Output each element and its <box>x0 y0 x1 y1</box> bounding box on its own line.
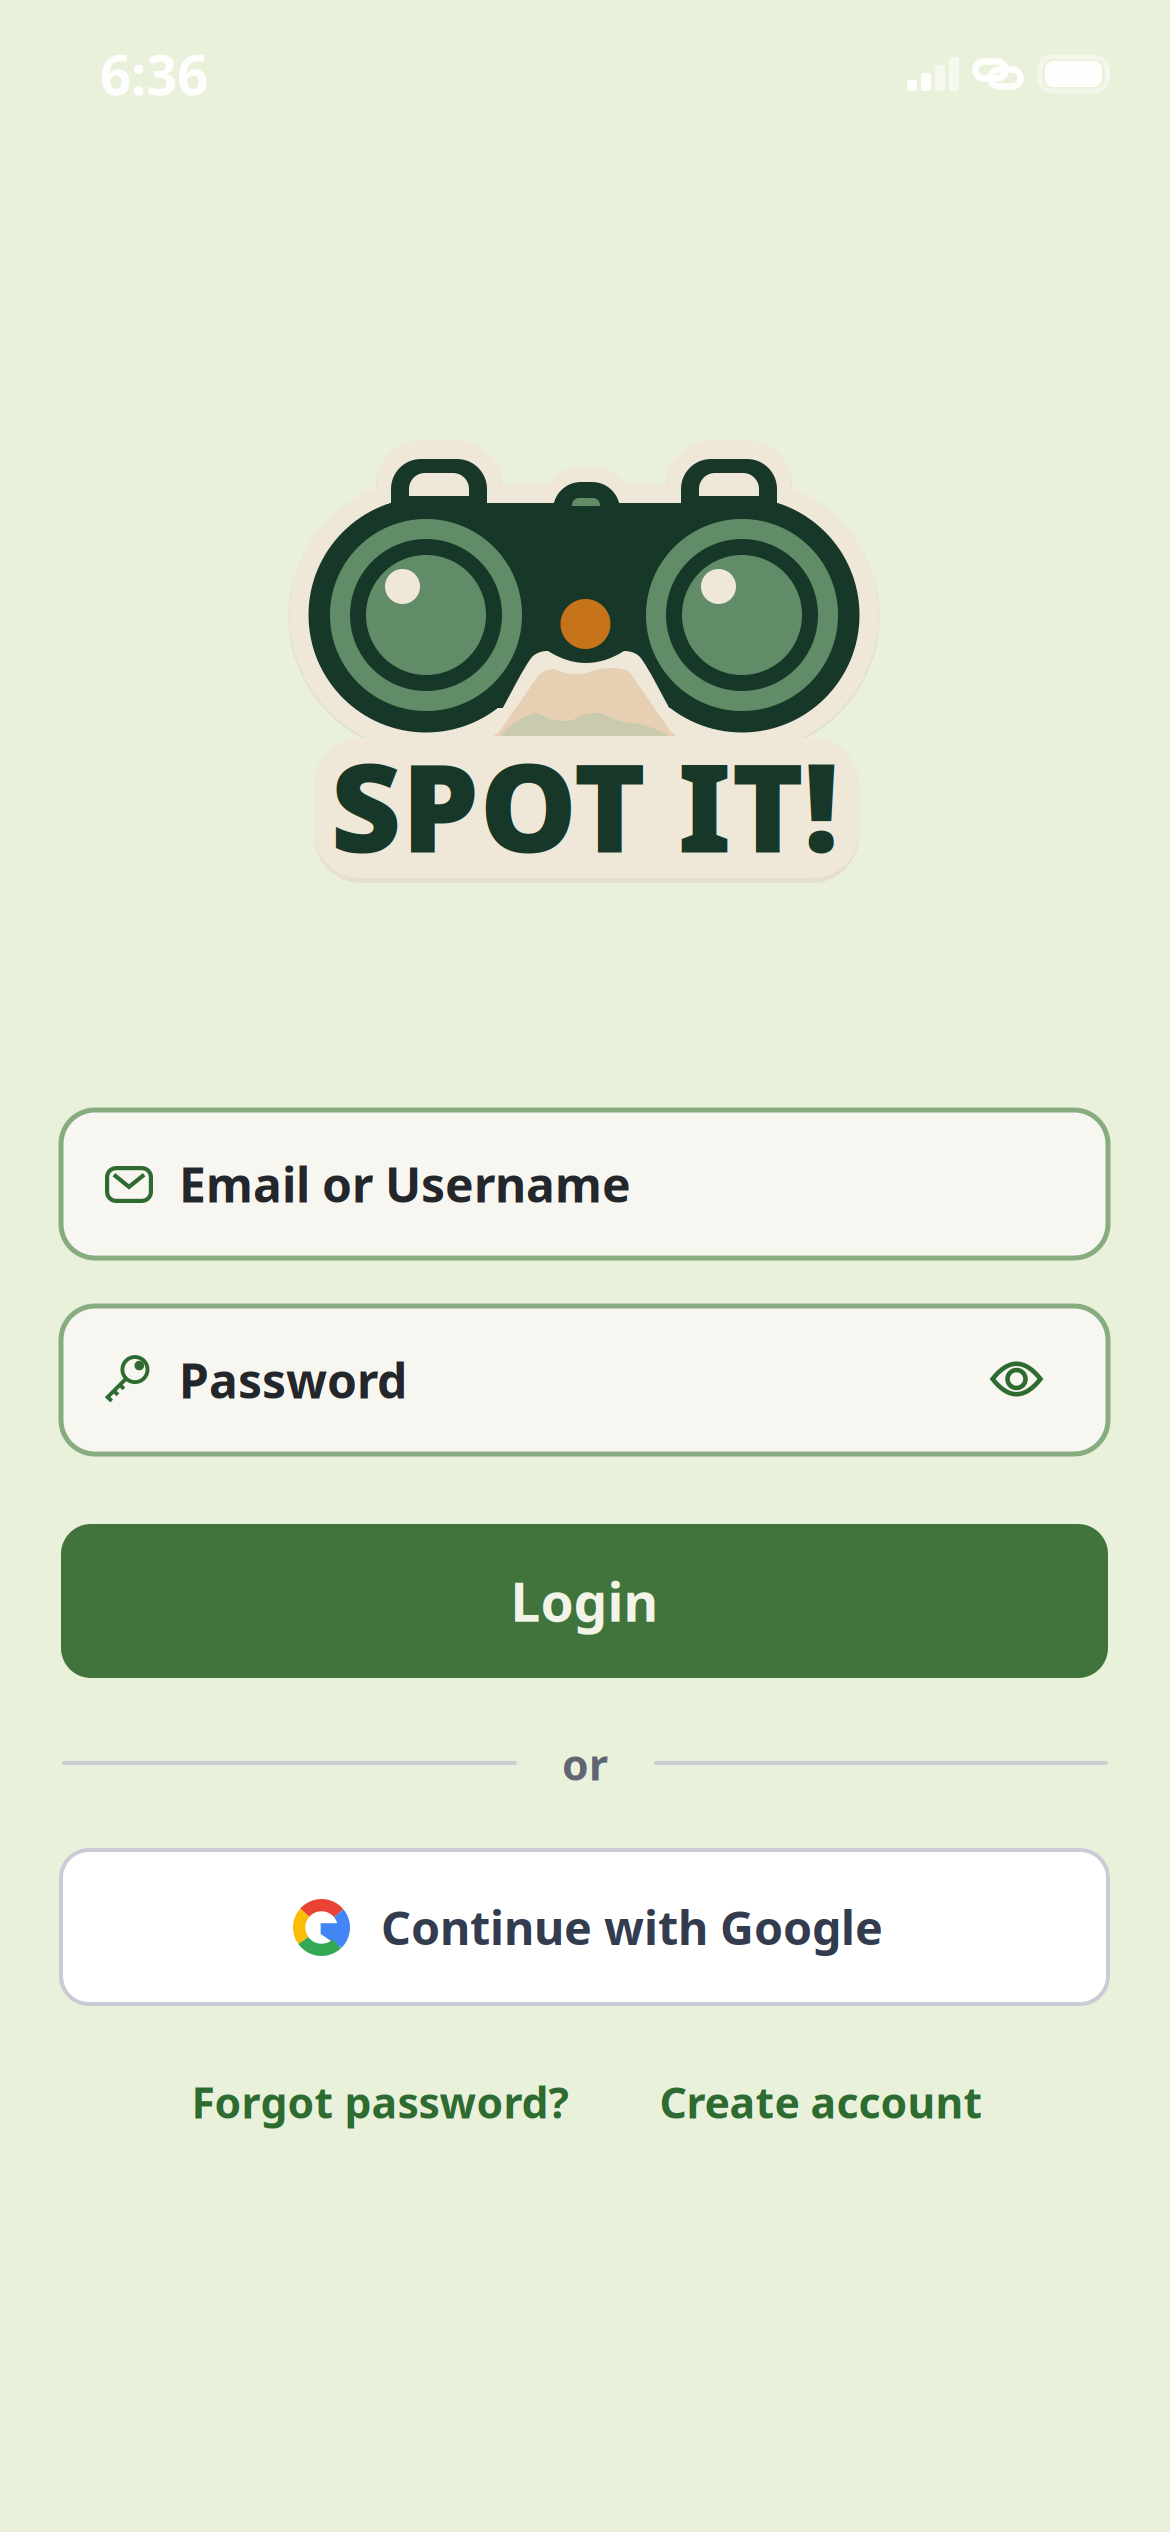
staticText: Password <box>179 1348 407 1412</box>
staticText: Continue with Google <box>381 1896 883 1958</box>
staticText: Email or Username <box>179 1152 631 1216</box>
staticText: 6:36 <box>100 38 208 110</box>
button[interactable]: Show password <box>968 1331 1064 1427</box>
button[interactable]: Continue with Google <box>61 1850 1108 2004</box>
button[interactable]: Password <box>61 1306 1108 1454</box>
staticText: Login <box>510 1566 658 1636</box>
button[interactable]: Email or Username <box>61 1110 1108 1258</box>
staticText: or <box>562 1736 608 1792</box>
staticText: Forgot password? <box>191 2074 568 2130</box>
button[interactable]: Create account <box>640 2064 1002 2140</box>
staticText: SPOT IT! <box>330 724 839 886</box>
staticText: Create account <box>659 2074 982 2130</box>
button[interactable]: Forgot password? <box>170 2064 590 2140</box>
button[interactable]: Login <box>61 1524 1108 1678</box>
